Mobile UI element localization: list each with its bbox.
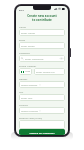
staticText: 9:41	[19, 8, 24, 11]
button[interactable]: Select Country	[19, 107, 65, 114]
button[interactable]: Show password	[60, 57, 63, 60]
staticText: Email	[19, 38, 26, 41]
staticText: +234	[25, 70, 31, 73]
button[interactable]	[19, 120, 65, 129]
staticText: Phone Number	[19, 64, 37, 67]
staticText: Referral code (if any)	[19, 116, 43, 119]
staticText: Select Gender	[21, 83, 38, 86]
staticText: Select Country	[21, 109, 38, 112]
button[interactable]: +234	[19, 68, 32, 75]
button[interactable]: CREATE MY ACCOUNT	[19, 129, 65, 135]
button[interactable]: Enter Name	[19, 29, 65, 36]
button[interactable]: Enter Email	[19, 42, 65, 49]
staticText: Password	[19, 51, 30, 54]
staticText: Country	[19, 103, 28, 106]
button[interactable]: Enter Password	[19, 55, 65, 62]
staticText: Enter Password	[25, 57, 60, 60]
staticText: Enter Email	[21, 44, 35, 47]
staticText: Name	[19, 25, 26, 28]
staticText: City	[19, 90, 24, 93]
staticText: Create new account to contribute	[19, 14, 65, 22]
staticText: CREATE MY ACCOUNT	[19, 131, 65, 134]
button[interactable]: Select Gender	[19, 81, 65, 88]
staticText: Enter Name	[21, 31, 35, 34]
button[interactable]: Enter Phone No	[34, 68, 65, 75]
staticText: Enter Phone No	[36, 70, 55, 73]
staticText: Enter City	[21, 96, 33, 99]
button[interactable]: Enter City	[19, 94, 65, 101]
staticText: Gender	[19, 77, 28, 80]
